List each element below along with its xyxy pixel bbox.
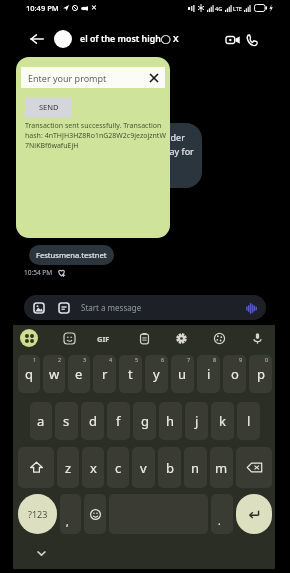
button[interactable]: Hide keyboard <box>33 545 49 561</box>
staticText: d <box>89 412 97 430</box>
staticText: 4 <box>109 356 113 363</box>
button[interactable]: i <box>197 355 220 393</box>
button[interactable]: d <box>81 402 104 440</box>
button[interactable]: Stickers <box>61 330 77 346</box>
staticText: 2 <box>58 356 62 363</box>
button[interactable]: b <box>158 447 181 488</box>
staticText: w <box>49 365 60 383</box>
staticText: 8 <box>213 356 217 363</box>
staticText: 1 <box>33 356 37 363</box>
staticText: SEND <box>39 102 59 112</box>
button[interactable]: Gallery <box>33 302 45 314</box>
staticText: vay for <box>165 145 194 157</box>
button[interactable]: Voice input <box>249 330 265 346</box>
button[interactable]: k <box>211 402 234 440</box>
button[interactable]: m <box>210 447 233 488</box>
staticText: y <box>153 365 160 383</box>
button[interactable]: w <box>43 355 65 393</box>
button[interactable]: Theme <box>211 330 227 346</box>
button[interactable]: n <box>184 447 207 488</box>
button[interactable]: x <box>82 447 104 488</box>
staticText: i <box>207 365 211 383</box>
button[interactable]: j <box>185 402 208 440</box>
staticText: q <box>25 365 33 383</box>
staticText: t <box>128 365 133 383</box>
button[interactable]: Backspace <box>236 447 272 488</box>
button[interactable]: v <box>132 447 155 488</box>
staticText: Festusmena.testnet <box>36 250 107 260</box>
staticText: a <box>37 412 45 430</box>
button[interactable]: l <box>237 402 260 440</box>
staticText: b <box>166 459 174 477</box>
button[interactable]: s <box>55 402 78 440</box>
staticText: v <box>140 459 147 477</box>
staticText: Enter your prompt <box>28 72 107 84</box>
staticText: 10:49 PM <box>26 3 59 13</box>
staticText: m <box>215 459 228 477</box>
staticText: el of the most high◯ X <box>80 33 179 45</box>
button[interactable]: Call <box>244 32 259 47</box>
button[interactable]: . <box>211 494 233 534</box>
button[interactable]: ?123 <box>18 494 57 534</box>
staticText: r <box>102 365 108 383</box>
button[interactable]: z <box>57 447 79 488</box>
staticText: Start a message <box>81 302 142 313</box>
button[interactable]: p <box>249 355 272 393</box>
button[interactable]: t <box>119 355 142 393</box>
button[interactable]: Enter <box>236 494 272 534</box>
button[interactable]: y <box>145 355 168 393</box>
staticText: x <box>90 459 97 477</box>
button[interactable]: q <box>18 355 40 393</box>
staticText: u <box>178 365 187 383</box>
button[interactable]: Settings <box>173 330 189 346</box>
button[interactable]: GIF <box>95 333 112 345</box>
button[interactable]: SEND <box>25 97 72 117</box>
staticText: 7NiKBf6wafuEjH <box>25 141 79 151</box>
button[interactable]: a <box>30 402 52 440</box>
staticText: 5 <box>135 356 139 363</box>
button[interactable]: Enter your prompt <box>21 67 165 88</box>
staticText: h <box>166 412 175 430</box>
button[interactable]: Voice message <box>243 300 259 316</box>
staticText: s <box>63 412 70 430</box>
staticText: Transaction sent successfully. Transacti… <box>25 121 162 131</box>
staticText: 9 <box>239 356 243 363</box>
staticText: hash: 4nTHJH3HZ8Ro1nG28W2c9jezojzntW <box>25 131 166 141</box>
staticText: GIF <box>97 334 110 344</box>
button[interactable]: Clear <box>148 72 160 84</box>
button[interactable]: e <box>68 355 90 393</box>
button[interactable]: Emoji <box>84 494 106 534</box>
staticText: l <box>247 412 251 430</box>
button[interactable]: g <box>133 402 156 440</box>
button[interactable]: Video call <box>225 32 240 47</box>
staticText: g <box>141 412 149 430</box>
staticText: n <box>191 459 200 477</box>
staticText: 0 <box>265 356 269 363</box>
button[interactable]: Shift <box>18 447 54 488</box>
staticText: k <box>219 412 226 430</box>
button[interactable]: o <box>223 355 246 393</box>
button[interactable]: Festusmena.testnet <box>29 245 114 265</box>
button[interactable]: , <box>60 494 81 534</box>
staticText: , <box>66 515 69 529</box>
staticText: . <box>218 514 221 528</box>
staticText: LTE <box>233 5 242 12</box>
staticText: 7 <box>187 356 191 363</box>
button[interactable]: Clipboard <box>136 330 152 346</box>
button[interactable]: h <box>159 402 182 440</box>
staticText: 6 <box>161 356 165 363</box>
button[interactable]: r <box>93 355 116 393</box>
button[interactable]: GIF <box>58 302 70 314</box>
staticText: p <box>257 365 265 383</box>
button[interactable]: c <box>107 447 129 488</box>
button[interactable]: f <box>107 402 130 440</box>
staticText: o <box>231 365 239 383</box>
staticText: 10:54 PM <box>24 268 53 277</box>
button[interactable]: Apps <box>20 329 38 347</box>
button[interactable]: Back <box>26 28 48 50</box>
staticText: j <box>195 412 199 430</box>
button[interactable]: Gallery <box>24 295 266 320</box>
button[interactable]: u <box>171 355 194 393</box>
staticText: ?123 <box>28 508 48 520</box>
